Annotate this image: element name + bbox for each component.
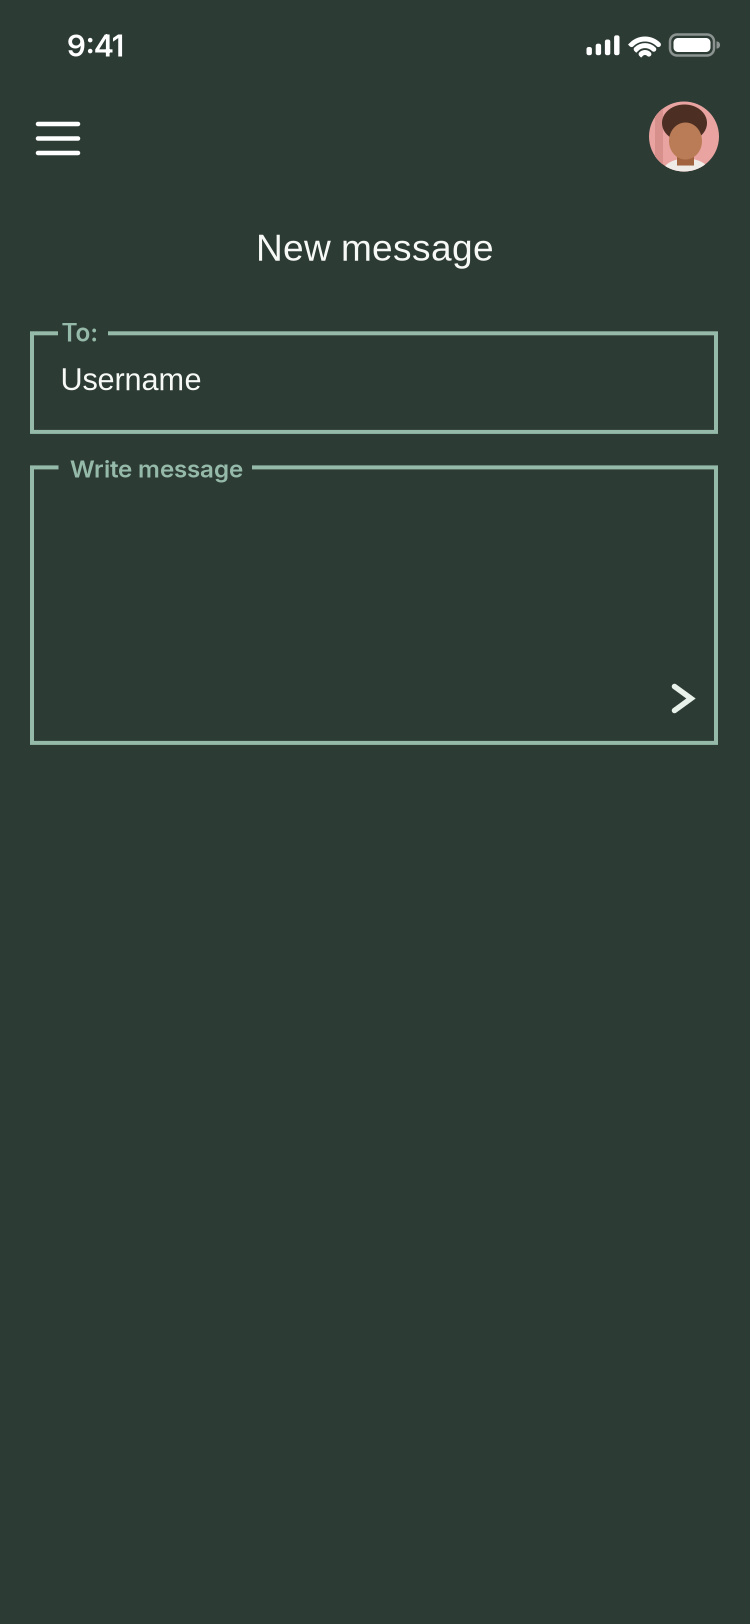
button[interactable]: Profile	[649, 101, 719, 171]
staticText: Username	[60, 362, 201, 397]
button[interactable]: Send	[671, 683, 694, 714]
button[interactable]: To: Username	[30, 331, 718, 434]
staticText: New message	[256, 227, 494, 269]
staticText: To:	[61, 318, 97, 347]
staticText: 9:41	[67, 27, 124, 64]
staticText: Write message	[70, 454, 243, 483]
button[interactable]: Menu	[36, 122, 80, 155]
button[interactable]: Write message	[30, 465, 718, 745]
